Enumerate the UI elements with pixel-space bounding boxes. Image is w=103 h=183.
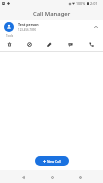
staticText: 123-456-7890: [18, 28, 37, 32]
staticText: Test person: [18, 22, 39, 27]
staticText: 2:01: [90, 1, 98, 6]
button[interactable]: Delete: [0, 38, 19, 51]
button[interactable]: Home: [38, 170, 66, 183]
staticText: Call Manager: [33, 10, 71, 18]
staticText: New Call: [47, 159, 61, 163]
button[interactable]: Test person: [0, 20, 103, 34]
button[interactable]: Recents: [66, 170, 94, 183]
button[interactable]: Edit: [39, 38, 60, 51]
button[interactable]: Message: [60, 38, 81, 51]
button[interactable]: New Call: [35, 156, 69, 166]
button[interactable]: Collapse: [92, 23, 100, 31]
button[interactable]: Call: [81, 38, 102, 51]
staticText: Tools: [6, 34, 14, 38]
button[interactable]: Back: [9, 170, 38, 183]
staticText: 100%: [76, 1, 86, 6]
button[interactable]: Block: [19, 38, 39, 51]
